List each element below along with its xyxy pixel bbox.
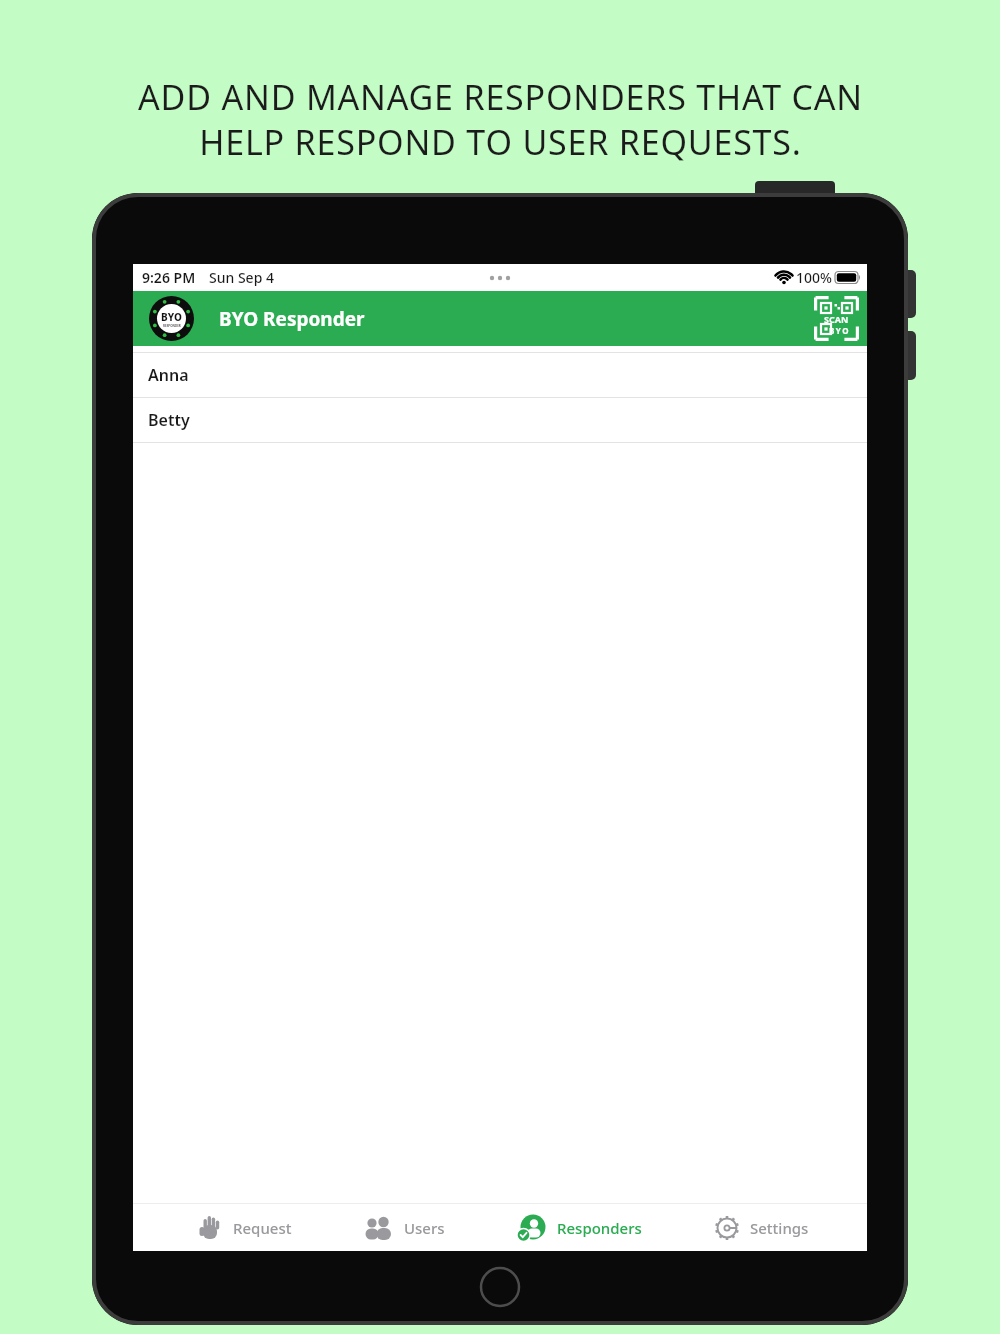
staticText: Anna: [148, 364, 189, 386]
staticText: BYO Responder: [219, 306, 365, 332]
staticText: BYO: [829, 325, 850, 336]
staticText: RESPONDER: [163, 324, 181, 328]
staticText: Request: [233, 1218, 292, 1238]
button[interactable]: Users: [364, 1204, 445, 1251]
button[interactable]: Settings: [714, 1204, 809, 1251]
button[interactable]: Responders: [517, 1204, 642, 1251]
staticText: BYO: [161, 310, 182, 324]
button[interactable]: SCAN: [814, 296, 859, 341]
staticText: 9:26 PM: [142, 268, 196, 287]
button[interactable]: Request: [199, 1204, 292, 1251]
staticText: Responders: [557, 1218, 642, 1238]
staticText: 100%: [796, 268, 832, 287]
button[interactable]: Anna: [133, 353, 867, 397]
staticText: Betty: [148, 409, 190, 431]
staticText: Users: [404, 1218, 445, 1238]
staticText: SCAN: [824, 313, 849, 325]
staticText: Sun Sep 4: [209, 268, 274, 287]
button[interactable]: Betty: [133, 398, 867, 442]
staticText: ADD AND MANAGE RESPONDERS THAT CAN HELP …: [138, 74, 863, 164]
staticText: Settings: [750, 1218, 809, 1238]
